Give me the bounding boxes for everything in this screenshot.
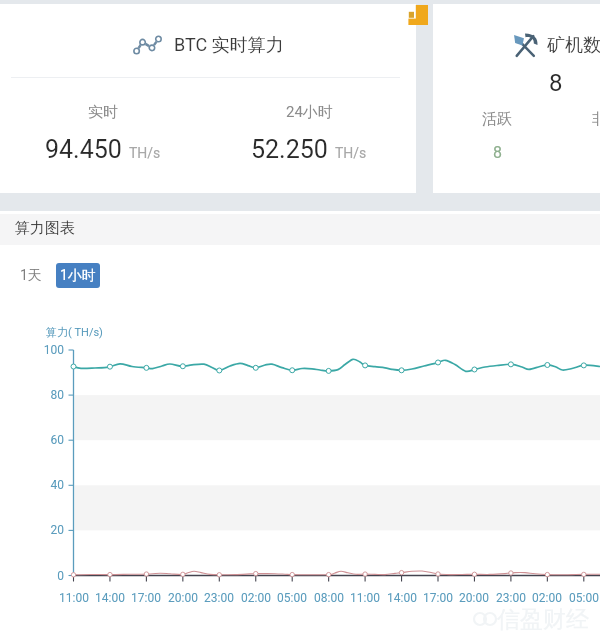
staticText: 非活跃 bbox=[592, 110, 600, 129]
staticText: 60 bbox=[50, 433, 64, 447]
button[interactable]: 1天 bbox=[20, 263, 55, 289]
staticText: 02:00 bbox=[532, 591, 562, 605]
staticText: 信盈财经 bbox=[497, 605, 589, 634]
staticText: 0 bbox=[57, 569, 64, 583]
staticText: 活跃 bbox=[482, 110, 512, 129]
staticText: 80 bbox=[50, 388, 64, 402]
staticText: 算力图表 bbox=[15, 219, 75, 238]
staticText: 20:00 bbox=[168, 591, 198, 605]
staticText: 05:00 bbox=[277, 591, 307, 605]
staticText: 实时 bbox=[88, 103, 118, 122]
staticText: 17:00 bbox=[423, 591, 453, 605]
staticText: 11:00 bbox=[350, 591, 380, 605]
staticText: TH/s bbox=[335, 145, 367, 161]
staticText: 14:00 bbox=[387, 591, 417, 605]
staticText: 23:00 bbox=[204, 591, 234, 605]
button[interactable]: 矿机数 bbox=[433, 4, 600, 193]
staticText: 8 bbox=[493, 143, 502, 162]
staticText: 算力( TH/s) bbox=[46, 325, 103, 339]
staticText: 20 bbox=[50, 523, 64, 537]
staticText: 05:00 bbox=[569, 591, 599, 605]
button[interactable]: 实时 bbox=[13, 103, 193, 173]
other: App logo bbox=[408, 5, 429, 25]
button[interactable]: 1小时 bbox=[56, 263, 100, 288]
staticText: 24小时 bbox=[286, 103, 333, 122]
staticText: 17:00 bbox=[131, 591, 161, 605]
staticText: 52.250 bbox=[251, 135, 328, 164]
staticText: 11:00 bbox=[59, 591, 89, 605]
staticText: 94.450 bbox=[45, 135, 122, 164]
staticText: 23:00 bbox=[496, 591, 526, 605]
staticText: TH/s bbox=[129, 145, 161, 161]
staticText: 1天 bbox=[20, 267, 42, 285]
staticText: 1小时 bbox=[60, 267, 96, 285]
staticText: 14:00 bbox=[95, 591, 125, 605]
staticText: 08:00 bbox=[314, 591, 344, 605]
staticText: 8 bbox=[549, 69, 563, 93]
button[interactable]: 24小时 bbox=[219, 103, 399, 173]
staticText: 100 bbox=[43, 343, 64, 357]
staticText: 40 bbox=[50, 478, 64, 492]
staticText: 20:00 bbox=[459, 591, 489, 605]
staticText: 矿机数 bbox=[547, 34, 600, 57]
button[interactable]: BTC 实时算力 bbox=[0, 4, 416, 193]
staticText: 02:00 bbox=[241, 591, 271, 605]
staticText: BTC 实时算力 bbox=[174, 34, 284, 57]
